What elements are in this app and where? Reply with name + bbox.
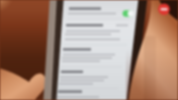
button[interactable]: Messages settings screen <box>0 0 178 100</box>
